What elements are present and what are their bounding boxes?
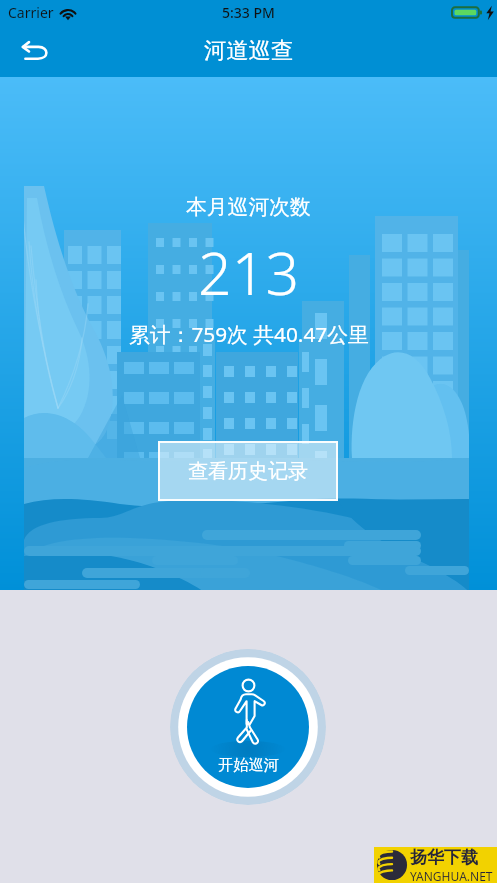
staticText: 213 xyxy=(198,232,300,312)
staticText: 开始巡河 xyxy=(218,755,279,774)
staticText: 查看历史记录 xyxy=(188,459,308,484)
button[interactable]: 开始巡河 xyxy=(170,649,326,805)
staticText: 5:33 PM xyxy=(222,3,275,22)
button[interactable]: 查看历史记录 xyxy=(158,441,338,501)
staticText: YANGHUA.NET xyxy=(410,868,493,883)
staticText: 扬华下载 xyxy=(410,847,478,868)
button[interactable]: Back xyxy=(12,28,58,74)
staticText: 本月巡河次数 xyxy=(186,194,311,220)
staticText: Carrier xyxy=(8,3,54,22)
staticText: 累计：759次 共40.47公里 xyxy=(129,320,369,348)
staticText: 河道巡查 xyxy=(204,37,294,65)
